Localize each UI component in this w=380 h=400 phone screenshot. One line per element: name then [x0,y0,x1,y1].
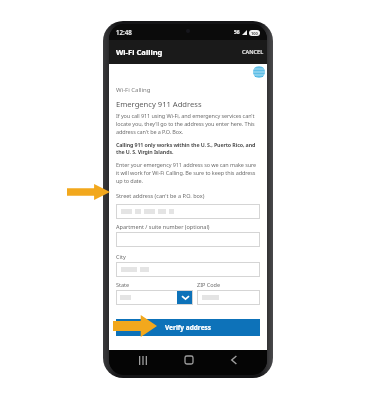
staticText: 12:48 [116,28,132,36]
staticText: City [116,253,126,260]
button[interactable] [116,232,260,247]
staticText: Apartment / suite number (optional) [116,223,210,230]
staticText: Wi-Fi Calling [116,86,151,94]
button[interactable] [197,290,260,305]
button[interactable]: CANCEL [242,40,267,64]
staticText: Calling 911 only works within the U. S.,… [116,141,260,156]
button[interactable] [116,262,260,277]
staticText: Street address (can't be a P.O. box) [116,192,205,199]
button[interactable] [116,204,260,219]
button[interactable]: Wi-Fi Calling [109,40,267,64]
button[interactable]: Recent apps [133,352,154,368]
staticText: Verify address [165,323,212,332]
button[interactable]: Back [223,352,244,368]
staticText: 100 [251,31,258,36]
staticText: Enter your emergency 911 address so we c… [116,161,260,185]
staticText: ZIP Code [197,281,221,288]
staticText: If you call 911 using Wi-Fi, and emergen… [116,112,260,136]
button[interactable]: Select state [177,290,193,305]
staticText: State [116,281,130,288]
button[interactable]: Select state [116,290,193,305]
button[interactable]: Verify address [116,319,260,336]
staticText: CANCEL [242,48,264,56]
staticText: Wi-Fi Calling [116,47,163,57]
button[interactable]: Home [178,352,199,368]
staticText: 56 [234,29,240,36]
staticText: Emergency 911 Address [116,99,202,109]
